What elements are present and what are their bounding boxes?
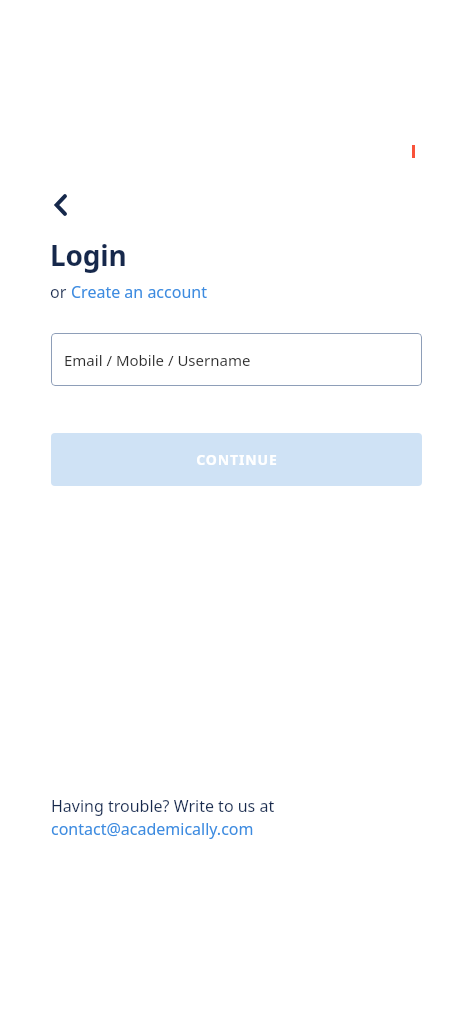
button[interactable]: Create an account [71,281,207,303]
staticText: Login [50,236,127,274]
button[interactable]: CONTINUE [51,433,422,486]
staticText: Create an account [71,281,207,303]
staticText: Email / Mobile / Username [64,350,251,370]
staticText: contact@academically.com [51,818,254,840]
button[interactable]: Email / Mobile / Username [51,333,422,386]
button[interactable]: Back [42,186,80,224]
staticText: CONTINUE [196,450,278,469]
button[interactable]: contact@academically.com [51,818,254,840]
staticText: or [50,281,71,303]
staticText: Having trouble? Write to us at [51,795,275,817]
